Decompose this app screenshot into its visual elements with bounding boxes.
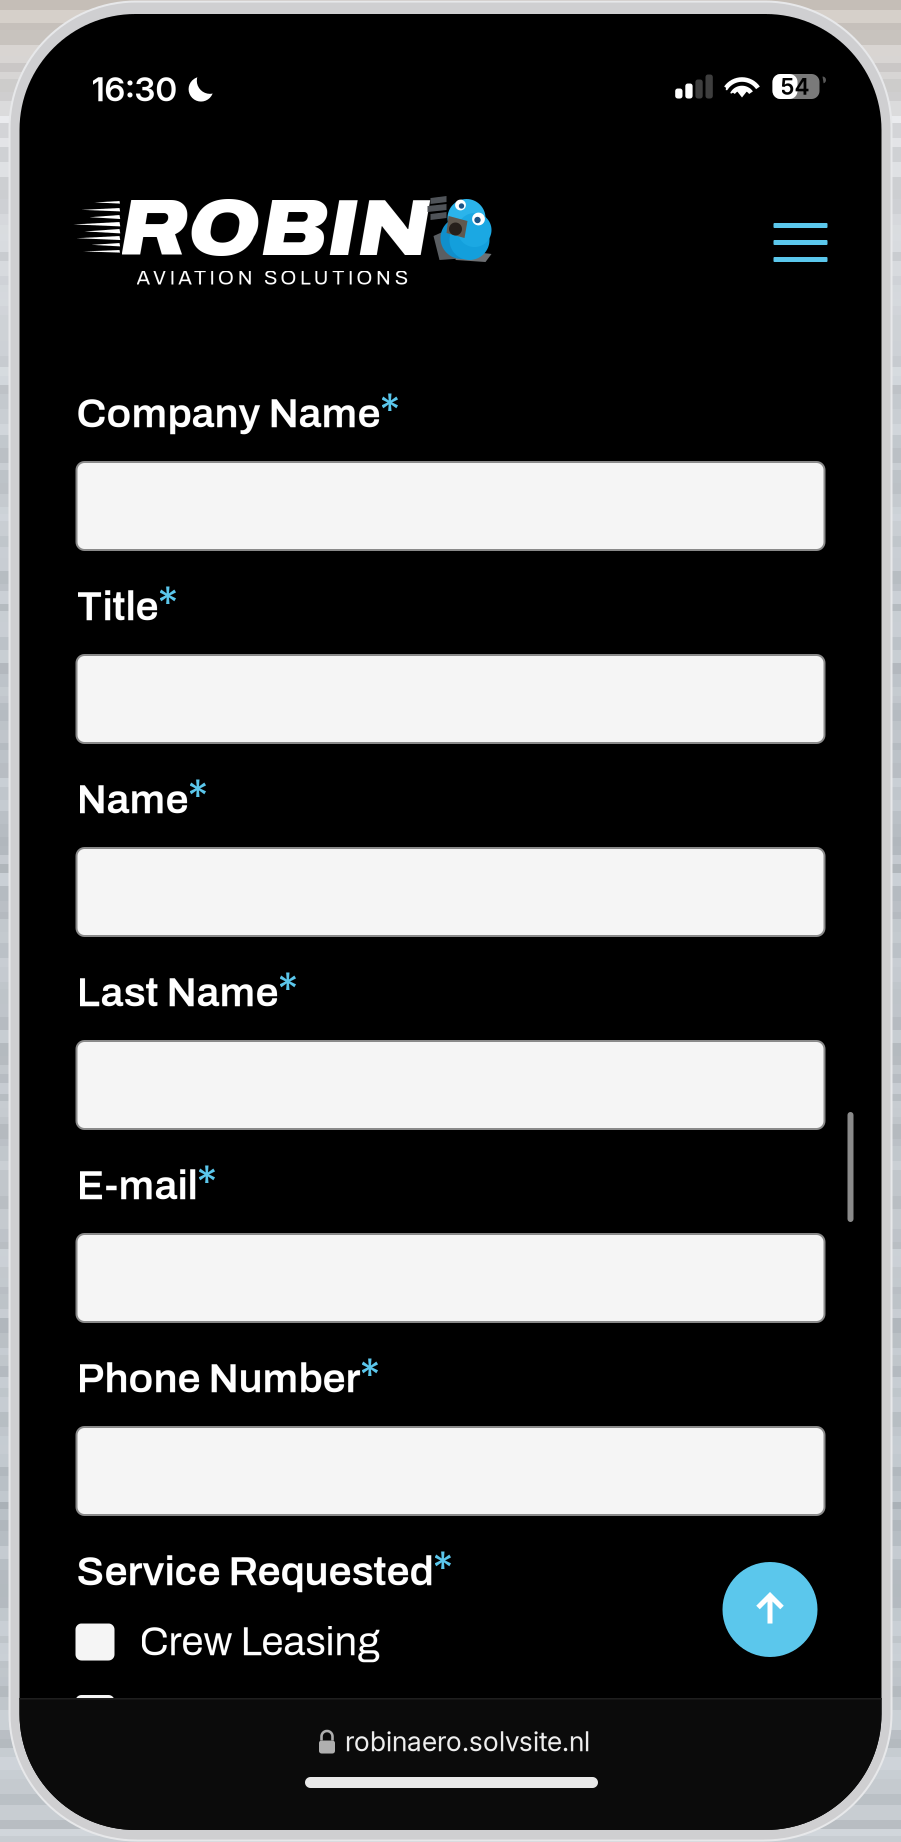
staticText: Last Name	[76, 970, 278, 1015]
staticText: *	[359, 1348, 380, 1403]
button[interactable]	[76, 462, 824, 550]
button[interactable]: robinaero.solvsite.nl	[315, 1726, 586, 1756]
button[interactable]	[76, 1041, 824, 1129]
staticText: E-mail	[76, 1163, 197, 1208]
staticText: 54	[780, 73, 809, 100]
staticText: robinaero.solvsite.nl	[345, 1725, 590, 1758]
staticText: *	[277, 962, 298, 1017]
staticText: *	[196, 1155, 217, 1210]
button[interactable]	[76, 655, 824, 743]
staticText: AVIATION SOLUTIONS	[136, 267, 408, 289]
staticText: ROBIN	[119, 186, 430, 272]
staticText: Crew Leasing	[139, 1620, 379, 1664]
button[interactable]: Crew Leasing	[75, 1621, 379, 1663]
staticText: Title	[76, 584, 158, 629]
staticText: Company Name	[76, 391, 380, 436]
button[interactable]: Menu	[773, 223, 827, 262]
staticText: 16:30	[91, 69, 177, 109]
button[interactable]: Scroll to top	[722, 1562, 817, 1657]
button[interactable]	[76, 848, 824, 936]
button[interactable]	[76, 1234, 824, 1322]
button[interactable]	[76, 1427, 824, 1515]
staticText: Service Requested	[76, 1549, 433, 1594]
staticText: *	[187, 769, 208, 824]
staticText: Phone Number	[76, 1356, 360, 1401]
staticText: *	[379, 383, 400, 438]
staticText: *	[432, 1541, 453, 1596]
staticText: *	[157, 576, 178, 631]
staticText: Name	[76, 777, 188, 822]
